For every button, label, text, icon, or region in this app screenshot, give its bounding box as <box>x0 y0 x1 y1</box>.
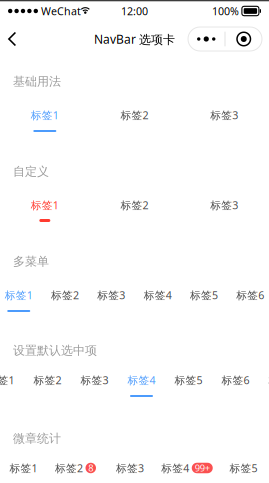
button[interactable]: 标签2 <box>55 462 96 483</box>
staticText: 标签1 <box>0 373 14 387</box>
button[interactable]: 标签1 <box>31 199 59 222</box>
button[interactable]: 标签5 <box>174 374 202 397</box>
staticText: 标签4 <box>161 461 189 475</box>
button[interactable]: 标签1 <box>5 289 33 312</box>
staticText: 标签6 <box>236 288 264 302</box>
button[interactable]: 标签3 <box>210 199 238 222</box>
button[interactable]: 标签6 <box>236 289 264 312</box>
staticText: 标签5 <box>190 288 218 302</box>
button[interactable]: 标签6 <box>221 374 249 397</box>
staticText: 标签4 <box>127 373 155 387</box>
button[interactable]: 标签3 <box>210 109 238 132</box>
staticText: 设置默认选中项 <box>13 343 97 358</box>
staticText: 标签3 <box>116 461 144 475</box>
staticText: 标签1 <box>31 108 59 122</box>
button[interactable]: 标签3 <box>80 374 108 397</box>
staticText: 99+ <box>195 462 210 474</box>
button[interactable]: Back <box>0 26 26 52</box>
button[interactable]: 标签1 <box>31 109 59 132</box>
button[interactable]: 标签5 <box>190 289 218 312</box>
button[interactable]: 标签3 <box>116 462 144 483</box>
staticText: 标签3 <box>80 373 108 387</box>
button[interactable]: 标签7 <box>268 374 269 397</box>
button[interactable]: 标签5 <box>229 462 257 483</box>
staticText: NavBar 选项卡 <box>94 31 175 47</box>
button[interactable]: 标签2 <box>33 374 61 397</box>
button[interactable]: 标签4 <box>161 462 213 483</box>
staticText: WeChat <box>41 4 81 18</box>
staticText: 8 <box>88 462 93 474</box>
staticText: 标签1 <box>5 288 33 302</box>
button[interactable]: 标签2 <box>120 109 148 132</box>
staticText: 微章统计 <box>13 431 61 446</box>
button[interactable]: More options <box>188 27 262 51</box>
staticText: 标签7 <box>268 373 269 387</box>
button[interactable]: 标签1 <box>0 374 14 397</box>
staticText: 100% <box>212 4 239 18</box>
staticText: 标签4 <box>144 288 172 302</box>
staticText: 标签2 <box>120 198 148 212</box>
staticText: 标签3 <box>97 288 125 302</box>
staticText: 标签1 <box>31 198 59 212</box>
staticText: 标签2 <box>120 108 148 122</box>
staticText: 标签5 <box>174 373 202 387</box>
staticText: 标签3 <box>210 198 238 212</box>
staticText: 标签5 <box>229 461 257 475</box>
button[interactable]: 标签2 <box>51 289 79 312</box>
button[interactable]: 标签2 <box>120 199 148 222</box>
button[interactable]: 标签4 <box>144 289 172 312</box>
staticText: 标签2 <box>51 288 79 302</box>
staticText: 12:00 <box>121 4 148 18</box>
staticText: 标签1 <box>9 461 37 475</box>
button[interactable]: 标签3 <box>97 289 125 312</box>
staticText: 标签6 <box>221 373 249 387</box>
staticText: 自定义 <box>13 164 49 179</box>
staticText: 标签2 <box>33 373 61 387</box>
staticText: 标签3 <box>210 108 238 122</box>
button[interactable]: 标签1 <box>9 462 37 483</box>
staticText: 多菜单 <box>13 254 49 269</box>
staticText: 标签2 <box>55 461 83 475</box>
button[interactable]: 标签4 <box>127 374 155 397</box>
staticText: 基础用法 <box>13 74 61 89</box>
